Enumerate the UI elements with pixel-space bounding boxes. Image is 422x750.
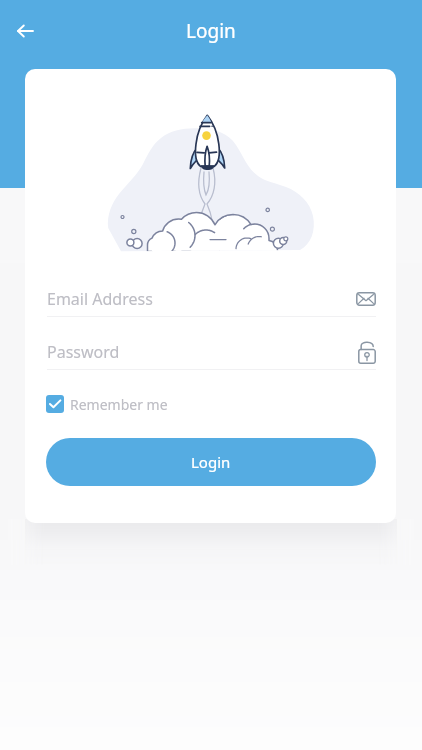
button[interactable]: Remember me xyxy=(46,392,168,416)
staticText: Email Address xyxy=(47,288,153,310)
staticText: Login xyxy=(191,452,231,472)
button[interactable]: Back xyxy=(3,9,47,53)
staticText: Remember me xyxy=(70,395,168,414)
button[interactable]: Login xyxy=(46,438,376,486)
staticText: Login xyxy=(186,18,236,44)
staticText: Password xyxy=(47,341,120,363)
